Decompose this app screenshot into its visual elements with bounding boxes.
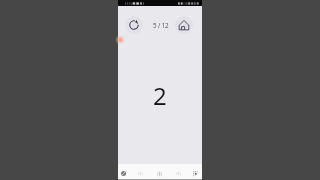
button[interactable]: Tabs: [151, 164, 168, 179]
button[interactable]: Home: [175, 16, 193, 34]
button[interactable]: Security info: [118, 164, 134, 179]
button[interactable]: Menu: [185, 164, 202, 179]
staticText: 2: [153, 79, 167, 107]
button[interactable]: Back: [134, 164, 151, 179]
button[interactable]: Bookmarks: [168, 164, 185, 179]
button[interactable]: 5 / 12: [153, 21, 169, 29]
button[interactable]: Refresh: [125, 16, 143, 34]
